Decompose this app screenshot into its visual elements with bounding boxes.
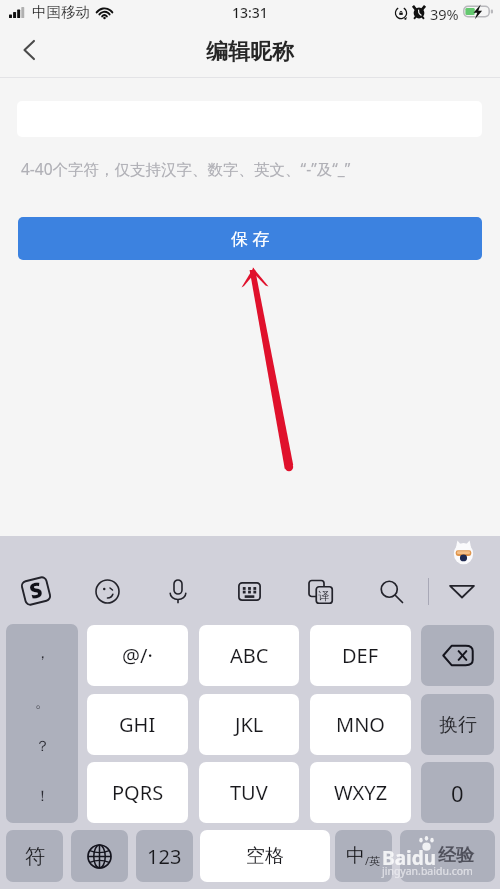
button[interactable]: TUV xyxy=(199,762,299,823)
staticText: ABC xyxy=(230,642,269,669)
button[interactable]: DEF xyxy=(310,625,411,686)
button[interactable] xyxy=(421,625,494,686)
button[interactable]: Keyboard layout xyxy=(219,565,279,617)
button[interactable]: @/· xyxy=(87,625,188,686)
staticText: 123 xyxy=(147,843,182,870)
button[interactable]: Voice input xyxy=(148,565,208,617)
button[interactable]: Sogou input xyxy=(6,565,66,617)
staticText: Baidu xyxy=(382,845,437,871)
staticText: 0 xyxy=(451,778,464,808)
button[interactable]: WXYZ xyxy=(310,762,411,823)
button[interactable]: ， xyxy=(6,624,78,823)
staticText: JKL xyxy=(235,711,264,738)
staticText: TUV xyxy=(230,779,268,806)
button[interactable]: Search xyxy=(361,565,421,617)
staticText: 13:31 xyxy=(232,3,268,22)
staticText: MNO xyxy=(336,711,385,738)
button[interactable]: Back xyxy=(6,26,54,78)
staticText: 。 xyxy=(35,693,50,712)
staticText: 4-40个字符，仅支持汉字、数字、英文、“-”及“_” xyxy=(21,158,351,179)
staticText: 译 xyxy=(318,589,329,603)
staticText: 编辑昵称 xyxy=(206,38,294,66)
button[interactable] xyxy=(400,830,495,882)
staticText: PQRS xyxy=(112,779,164,806)
button[interactable]: 空格 xyxy=(200,830,330,882)
staticText: 中 xyxy=(346,844,365,868)
staticText: WXYZ xyxy=(334,779,388,806)
button[interactable]: PQRS xyxy=(87,762,188,823)
button[interactable]: 保 存 xyxy=(18,217,482,260)
button[interactable]: Hide keyboard xyxy=(432,565,492,617)
staticText: ？ xyxy=(35,737,50,756)
staticText: @/· xyxy=(122,642,153,669)
button[interactable]: GHI xyxy=(87,694,188,755)
button[interactable]: AI assistant xyxy=(453,538,474,566)
staticText: 中国移动 xyxy=(32,3,90,21)
button[interactable]: ABC xyxy=(199,625,299,686)
button[interactable]: Emoji xyxy=(77,565,137,617)
staticText: jingyan.baidu.com xyxy=(382,864,473,878)
staticText: /英 xyxy=(365,853,381,868)
staticText: ， xyxy=(35,644,50,663)
staticText: ！ xyxy=(35,787,50,806)
button[interactable]: MNO xyxy=(310,694,411,755)
button[interactable]: 中 xyxy=(335,830,392,882)
button[interactable]: 换行 xyxy=(421,694,494,755)
staticText: GHI xyxy=(119,711,156,738)
staticText: 符 xyxy=(25,844,45,869)
staticText: 空格 xyxy=(246,844,284,868)
button[interactable]: 符 xyxy=(6,830,63,882)
staticText: 保 存 xyxy=(231,227,270,250)
button[interactable]: 0 xyxy=(421,762,494,823)
button[interactable] xyxy=(71,830,128,882)
button[interactable]: JKL xyxy=(199,694,299,755)
button[interactable]: 123 xyxy=(136,830,193,882)
staticText: 经验 xyxy=(438,844,474,867)
staticText: 39% xyxy=(430,4,459,24)
staticText: 换行 xyxy=(439,713,477,737)
button[interactable]: Translate xyxy=(290,565,350,617)
staticText: S xyxy=(26,575,46,606)
staticText: DEF xyxy=(342,642,379,669)
